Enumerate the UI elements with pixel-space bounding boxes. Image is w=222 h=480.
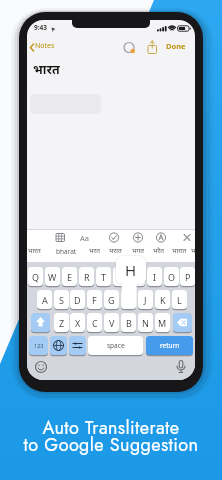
button[interactable]: E (62, 267, 77, 286)
button[interactable] (173, 359, 189, 375)
staticText: M (158, 317, 167, 329)
staticText: C (92, 317, 98, 329)
staticText: भारात (172, 246, 187, 255)
staticText: O (168, 271, 176, 283)
button[interactable]: S (54, 290, 69, 309)
button[interactable]: Y (113, 267, 128, 286)
button[interactable] (179, 230, 195, 245)
button[interactable]: I (147, 267, 162, 286)
staticText: to Google Suggestion (0, 432, 222, 460)
button[interactable] (153, 230, 169, 245)
button[interactable] (106, 230, 122, 245)
button[interactable]: F (87, 290, 102, 309)
staticText: F (92, 294, 97, 306)
staticText: R (84, 271, 90, 283)
button[interactable] (31, 313, 50, 332)
staticText: K (160, 294, 166, 306)
button[interactable] (52, 230, 68, 245)
button[interactable]: H (121, 290, 136, 309)
button[interactable] (69, 336, 86, 355)
button[interactable]: K (155, 290, 170, 309)
button[interactable] (50, 336, 67, 355)
staticText: Notes (35, 41, 55, 51)
staticText: E (67, 271, 73, 283)
button[interactable]: W (45, 267, 60, 286)
button[interactable]: U (130, 267, 145, 286)
button[interactable]: space (88, 336, 143, 355)
staticText: J (144, 294, 147, 306)
button[interactable]: N (138, 313, 153, 332)
button[interactable]: 123 (29, 336, 48, 355)
staticText: V (109, 317, 115, 329)
button[interactable]: P (180, 267, 195, 286)
staticText: भगत (132, 246, 144, 255)
button[interactable] (170, 247, 190, 261)
button[interactable]: Q (28, 267, 43, 286)
staticText: A (42, 294, 48, 306)
button[interactable]: return (146, 336, 193, 355)
staticText: S (59, 294, 64, 306)
button[interactable]: Z (54, 313, 69, 332)
staticText: भरत (89, 246, 100, 255)
button[interactable] (107, 247, 127, 261)
staticText: P (185, 271, 191, 283)
staticText: Auto Transliterate (0, 415, 222, 443)
button[interactable]: B (121, 313, 136, 332)
button[interactable]: G (104, 290, 119, 309)
staticText: space (107, 341, 125, 350)
button[interactable] (173, 313, 192, 332)
staticText: H (125, 260, 137, 280)
staticText: Aa (80, 233, 89, 243)
staticText: X (75, 317, 81, 329)
button[interactable]: T (96, 267, 111, 286)
staticText: भरात (109, 246, 122, 255)
staticText: bharat (56, 247, 77, 256)
button[interactable]: O (164, 267, 179, 286)
button[interactable] (130, 230, 146, 245)
staticText: G (108, 294, 115, 306)
staticText: W (48, 271, 57, 283)
button[interactable]: V (104, 313, 119, 332)
staticText: भारत (33, 61, 60, 78)
staticText: B (126, 317, 132, 329)
button[interactable] (33, 359, 49, 375)
button[interactable]: J (138, 290, 153, 309)
staticText: I (153, 271, 157, 283)
button[interactable] (54, 247, 74, 261)
button[interactable] (151, 247, 171, 261)
button[interactable]: X (70, 313, 85, 332)
staticText: U (134, 271, 141, 283)
button[interactable] (78, 230, 94, 245)
staticText: T (101, 271, 107, 283)
button[interactable]: A (37, 290, 52, 309)
staticText: भर्त (191, 246, 195, 255)
button[interactable] (130, 247, 150, 261)
staticText: return (160, 341, 180, 350)
staticText: 123 (34, 342, 44, 349)
button[interactable]: L (172, 290, 187, 309)
staticText: भारत (28, 246, 41, 255)
button[interactable] (188, 247, 195, 261)
button[interactable]: M (155, 313, 170, 332)
button[interactable]: C (87, 313, 102, 332)
staticText: L (177, 294, 182, 306)
staticText: Q (32, 271, 40, 283)
button[interactable]: Notes (35, 41, 59, 53)
staticText: Z (59, 317, 65, 329)
button[interactable] (87, 247, 107, 261)
staticText: भरैत (153, 246, 164, 255)
staticText: N (142, 317, 149, 329)
button[interactable]: R (79, 267, 94, 286)
button[interactable] (27, 247, 47, 261)
button[interactable]: Done (166, 41, 192, 53)
button[interactable]: D (70, 290, 85, 309)
staticText: D (74, 294, 81, 306)
staticText: Done (166, 41, 186, 51)
staticText: 9:43 (34, 23, 47, 32)
